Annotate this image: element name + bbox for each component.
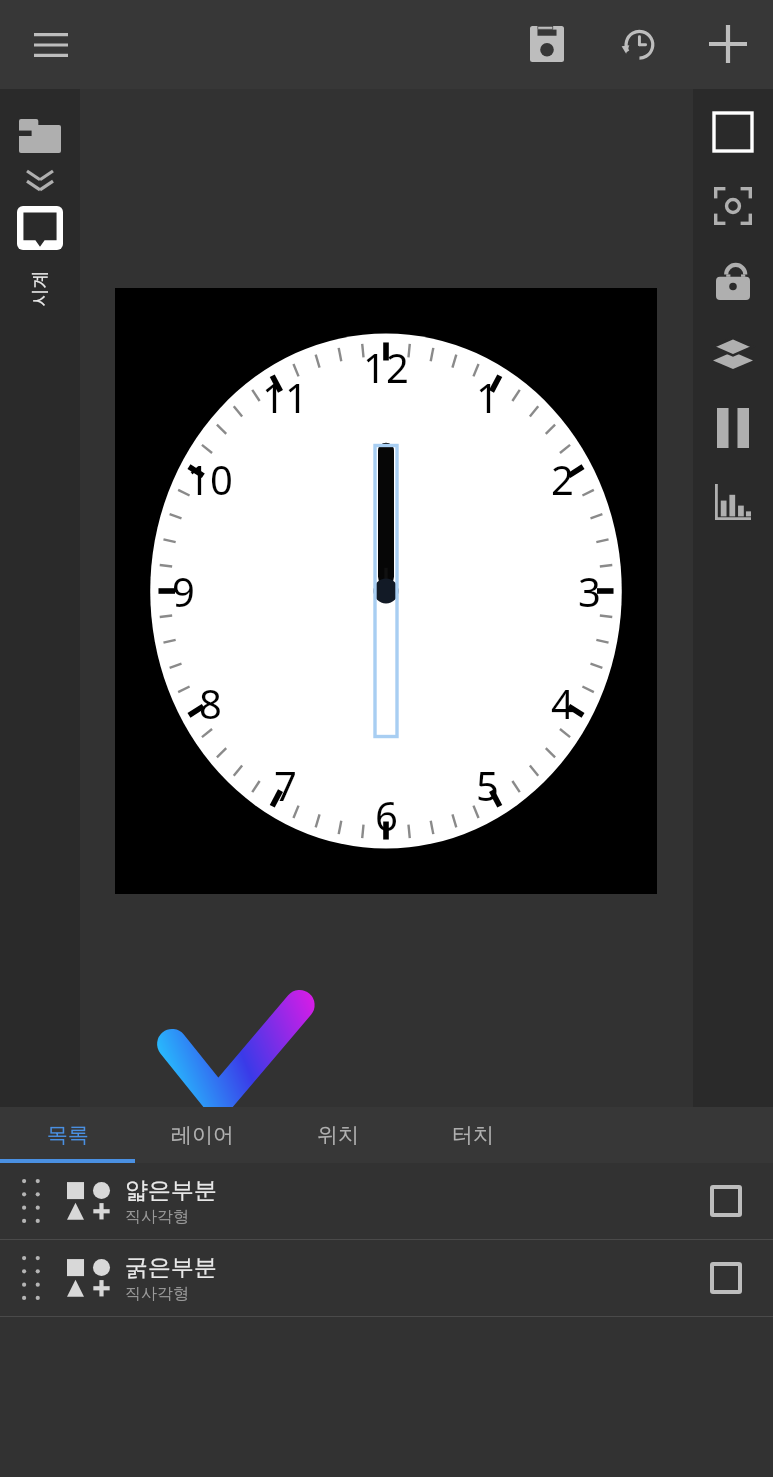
button[interactable]: Layers <box>696 317 770 391</box>
button[interactable]: Pause <box>696 391 770 465</box>
staticText: 11 <box>262 370 308 424</box>
button[interactable]: 목록 <box>0 1107 135 1163</box>
staticText: 목록 <box>47 1122 89 1148</box>
button[interactable]: 레이어 <box>135 1107 270 1163</box>
staticText: 터치 <box>452 1122 494 1148</box>
button[interactable]: Clock layer <box>11 199 69 257</box>
button[interactable]: Expand <box>15 165 65 199</box>
staticText: 직사각형 <box>125 1207 189 1227</box>
staticText: 직사각형 <box>125 1284 189 1304</box>
button[interactable]: Menu <box>22 16 80 74</box>
staticText: 위치 <box>317 1122 359 1148</box>
button[interactable]: Add <box>698 14 758 74</box>
button[interactable]: 위치 <box>270 1107 405 1163</box>
staticText: 얇은부분 <box>125 1176 217 1205</box>
staticText: 10 <box>187 452 233 506</box>
staticText: 1 <box>476 370 499 424</box>
button[interactable]: 얇은부분 <box>0 1163 773 1239</box>
button[interactable]: Save <box>517 14 577 74</box>
staticText: 레이어 <box>171 1122 234 1148</box>
staticText: 굵은부분 <box>125 1253 217 1282</box>
button[interactable]: Toggle visibility <box>693 1245 759 1311</box>
button[interactable]: Canvas size <box>696 95 770 169</box>
button[interactable]: History <box>608 14 668 74</box>
staticText: 3 <box>578 564 601 618</box>
staticText: 4 <box>551 676 574 730</box>
staticText: 6 <box>375 788 398 842</box>
button[interactable]: Toggle visibility <box>693 1168 759 1234</box>
button[interactable]: 터치 <box>405 1107 540 1163</box>
button[interactable]: Statistics <box>696 465 770 539</box>
staticText: 12 <box>363 340 409 394</box>
button[interactable]: 굵은부분 <box>0 1240 773 1316</box>
staticText: 9 <box>172 564 195 618</box>
staticText: 8 <box>199 676 222 730</box>
staticText: 2 <box>551 452 574 506</box>
staticText: 7 <box>274 758 297 812</box>
staticText: 시계 <box>28 270 51 306</box>
button[interactable]: Center <box>696 169 770 243</box>
button[interactable]: Lock <box>696 243 770 317</box>
button[interactable]: Folder <box>11 107 69 165</box>
staticText: 5 <box>476 758 499 812</box>
